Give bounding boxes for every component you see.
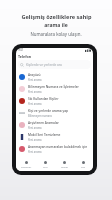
staticText: Gelişmiş özelliklere sahip (21, 13, 92, 21)
staticText: Son (43, 165, 48, 168)
staticText: Favoriler (21, 165, 32, 168)
staticText: Yeni arama (28, 150, 42, 154)
staticText: Arşivlenen Aramalar (28, 121, 59, 125)
button[interactable]: Kişilerde ve yerlerde ara (18, 60, 91, 69)
button[interactable]: Kişi ve yerlerde arama yap (16, 107, 93, 119)
staticText: Yeni arama (28, 138, 42, 142)
button[interactable]: Arayüzü (16, 71, 93, 83)
staticText: Sık Kullanılan Kişiler (28, 97, 59, 101)
staticText: arama ile (44, 22, 68, 29)
staticText: Yeni arama (28, 78, 42, 82)
button[interactable]: Son (36, 157, 55, 171)
staticText: Bilinmeyen numara (28, 114, 52, 118)
button[interactable]: Sık Kullanılan Kişiler (16, 95, 93, 107)
staticText: Tuş (81, 165, 86, 168)
staticText: Arayüzü (28, 73, 41, 77)
staticText: Telefon (18, 54, 32, 59)
staticText: Aranmayan numaraları bulabilmek için Web… (28, 145, 90, 149)
staticText: Kişiler (61, 165, 69, 168)
staticText: Bilinmeyen Numara ve İşletmeler (28, 85, 79, 89)
staticText: Yeni arama (28, 90, 42, 94)
button[interactable]: Bilinmeyen Numara ve İşletmeler (16, 83, 93, 95)
button[interactable]: Tuş (74, 157, 93, 171)
button[interactable]: Mobil Seri Temizleme (16, 131, 93, 143)
staticText: Yeni arama (28, 102, 42, 106)
staticText: Kişilerde ve yerlerde ara (26, 63, 62, 67)
staticText: 9:41 (18, 48, 24, 52)
button[interactable]: Kişiler (55, 157, 74, 171)
staticText: Mobil Seri Temizleme (28, 133, 61, 137)
button[interactable]: Arşivlenen Aramalar (16, 119, 93, 131)
staticText: Numaralara kolay ulaşın. (30, 31, 82, 37)
staticText: Kişi ve yerlerde arama yap (28, 109, 69, 113)
staticText: Yeni arama (28, 126, 42, 130)
button[interactable]: Favoriler (16, 157, 36, 171)
button[interactable]: Aranmayan numaraları bulabilmek için Web… (16, 143, 93, 155)
